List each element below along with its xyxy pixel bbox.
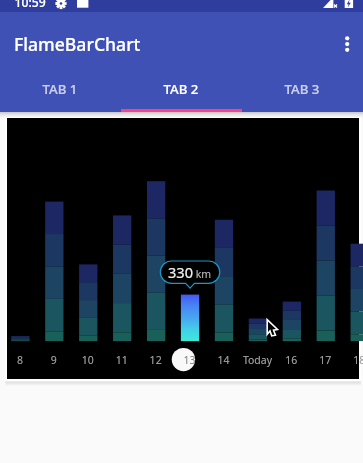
button[interactable] bbox=[242, 72, 363, 112]
button[interactable] bbox=[0, 72, 121, 112]
button[interactable]: More options bbox=[325, 22, 363, 66]
button[interactable] bbox=[121, 72, 242, 112]
button[interactable]: Flame bar chart bbox=[7, 118, 359, 379]
